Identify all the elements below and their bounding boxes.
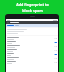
button[interactable]: Toggle [6,48,58,52]
button[interactable]: Toggle [6,56,58,60]
button[interactable]: Toggle [54,62,57,63]
button[interactable]: Toggle [6,44,58,48]
button[interactable]: Toggle [54,58,57,59]
button[interactable]: Toggle [54,54,57,55]
button[interactable]: Back [6,21,58,24]
staticText: Add fingerprint to [16,2,49,7]
button[interactable]: Toggle [54,38,57,39]
button[interactable]: Toggle [6,36,58,40]
button[interactable]: Toggle [54,46,57,47]
staticText: block spam [22,8,43,13]
button[interactable]: Toggle [54,50,57,51]
button[interactable]: Toggle [6,40,58,44]
other: Back [7,22,9,24]
button[interactable]: Toggle [6,52,58,56]
button[interactable]: Toggle [6,60,58,64]
button[interactable] [6,24,58,27]
button[interactable]: Toggle [54,42,57,43]
